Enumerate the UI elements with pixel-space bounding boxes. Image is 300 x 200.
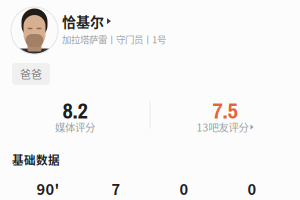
staticText: 7.5 [212,95,237,125]
staticText: 爸爸 [20,66,42,82]
staticText: 0 [247,178,256,199]
staticText: 基础数据 [12,151,60,168]
button[interactable]: 7.5 [150,95,300,135]
staticText: 7 [111,178,120,199]
staticText: 0 [179,178,188,199]
staticText: 8.2 [62,95,87,125]
button[interactable]: 爸爸 [12,63,50,85]
staticText: 加拉塔萨雷丨守门员丨1号 [62,32,166,46]
staticText: 媒体评分 [55,119,95,135]
staticText: 13吧友评分 [196,119,248,135]
button[interactable]: 8.2 [0,95,150,135]
staticText: 90' [36,178,59,199]
button[interactable]: 恰基尔 [11,7,300,54]
staticText: 恰基尔 [62,11,104,31]
